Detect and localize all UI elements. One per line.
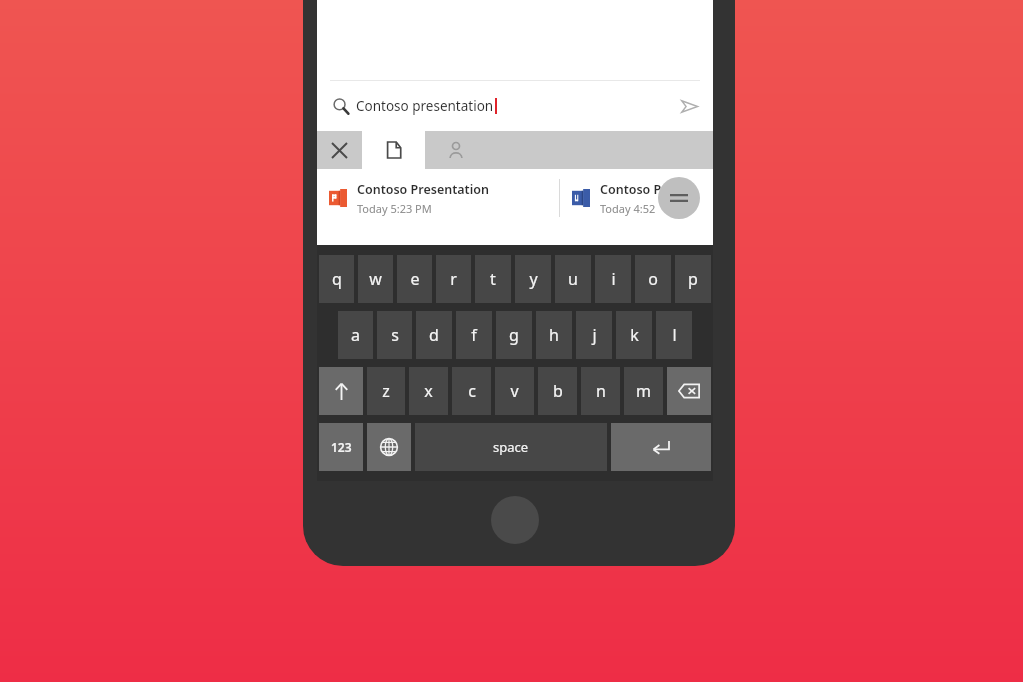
button[interactable]: d <box>416 311 452 359</box>
button[interactable]: c <box>452 367 491 415</box>
button[interactable]: k <box>616 311 652 359</box>
button[interactable]: b <box>538 367 577 415</box>
staticText: z <box>382 380 390 402</box>
button[interactable]: u <box>555 255 591 303</box>
button[interactable]: y <box>515 255 551 303</box>
button[interactable]: s <box>377 311 412 359</box>
button[interactable]: g <box>496 311 532 359</box>
staticText: l <box>672 324 677 346</box>
button[interactable]: q <box>319 255 354 303</box>
button[interactable]: t <box>475 255 511 303</box>
staticText: i <box>611 268 616 290</box>
button[interactable]: w <box>358 255 393 303</box>
button[interactable]: Contoso Prese <box>560 169 713 227</box>
staticText: d <box>429 324 439 346</box>
button[interactable]: h <box>536 311 572 359</box>
staticText: Today 5:23 PM <box>357 201 432 216</box>
staticText: c <box>468 380 476 402</box>
staticText: j <box>592 324 597 346</box>
staticText: Contoso presentation <box>356 97 494 115</box>
staticText: a <box>351 324 360 346</box>
button[interactable]: j <box>576 311 612 359</box>
button[interactable]: a <box>338 311 373 359</box>
staticText: g <box>509 324 519 346</box>
button[interactable]: z <box>367 367 405 415</box>
button[interactable]: i <box>595 255 631 303</box>
button[interactable]: Close <box>317 131 362 169</box>
staticText: p <box>688 268 698 290</box>
staticText: u <box>568 268 578 290</box>
staticText: s <box>391 324 399 346</box>
staticText: o <box>648 268 658 290</box>
button[interactable]: 123 <box>319 423 363 471</box>
staticText: x <box>424 380 433 402</box>
button[interactable]: Send <box>671 88 707 124</box>
staticText: r <box>450 268 457 290</box>
staticText: Contoso Prese <box>600 181 688 198</box>
button[interactable]: Home <box>491 496 539 544</box>
button[interactable]: x <box>409 367 448 415</box>
staticText: q <box>332 268 342 290</box>
button[interactable]: l <box>656 311 692 359</box>
button[interactable]: space <box>415 423 607 471</box>
button[interactable]: Enter <box>611 423 711 471</box>
button[interactable]: Contoso presentation <box>317 81 713 131</box>
button[interactable]: p <box>675 255 711 303</box>
staticText: Contoso Presentation <box>357 181 489 198</box>
staticText: y <box>529 268 538 290</box>
button[interactable]: Drag handle <box>658 177 700 219</box>
button[interactable]: o <box>635 255 671 303</box>
button[interactable]: Contoso Presentation <box>317 169 559 227</box>
button[interactable]: e <box>397 255 432 303</box>
button[interactable]: Shift <box>319 367 363 415</box>
staticText: v <box>510 380 519 402</box>
staticText: n <box>596 380 606 402</box>
button[interactable]: n <box>581 367 620 415</box>
staticText: w <box>369 268 382 290</box>
staticText: b <box>553 380 563 402</box>
button[interactable]: r <box>436 255 471 303</box>
button[interactable]: f <box>456 311 492 359</box>
staticText: f <box>471 324 477 346</box>
staticText: k <box>630 324 639 346</box>
staticText: Today 4:52 <box>600 201 656 216</box>
button[interactable]: Backspace <box>667 367 711 415</box>
staticText: 123 <box>331 439 352 455</box>
button[interactable]: People <box>425 131 487 169</box>
button[interactable]: Files <box>362 131 425 169</box>
staticText: e <box>410 268 420 290</box>
button[interactable]: v <box>495 367 534 415</box>
staticText: t <box>490 268 496 290</box>
staticText: m <box>636 380 651 402</box>
button[interactable]: Change language <box>367 423 411 471</box>
staticText: h <box>549 324 559 346</box>
staticText: space <box>493 438 529 456</box>
button[interactable]: m <box>624 367 663 415</box>
